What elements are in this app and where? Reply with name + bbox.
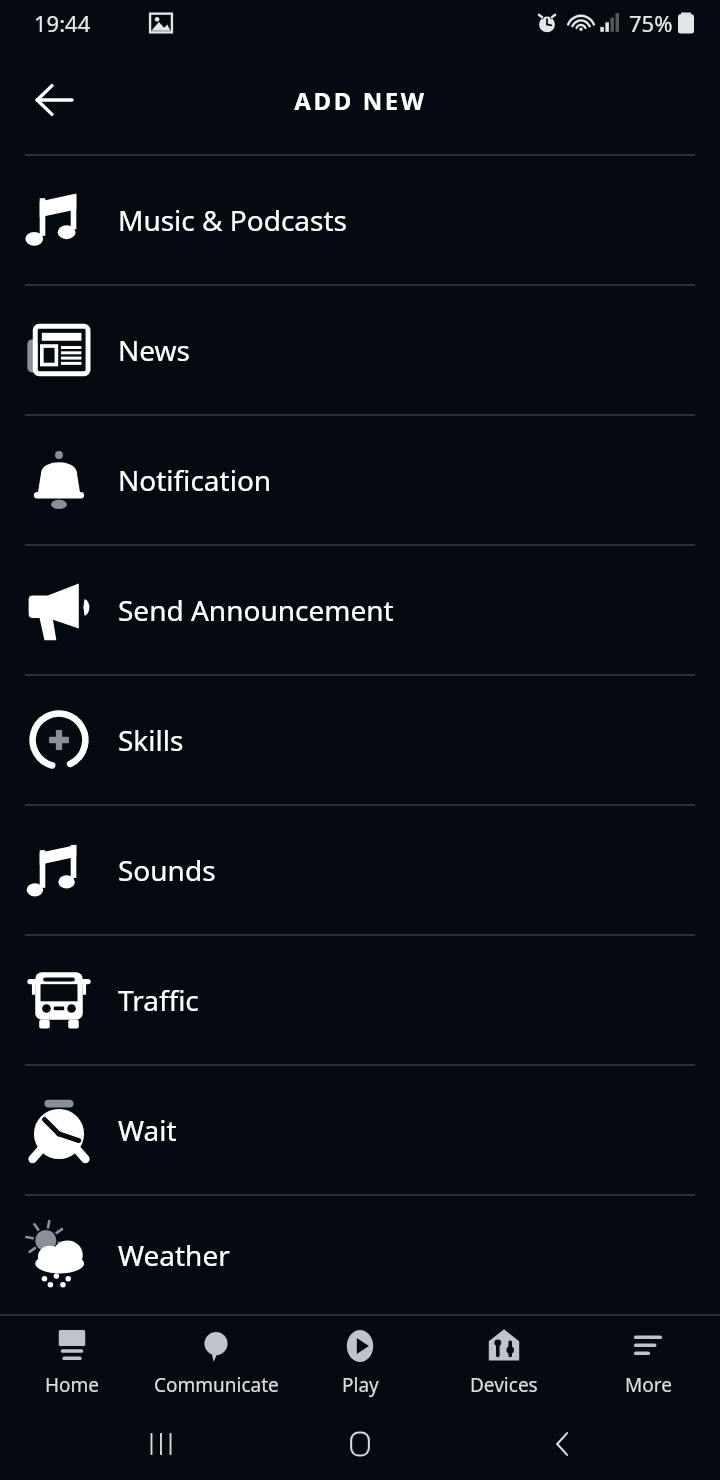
button[interactable]: More	[576, 1316, 720, 1408]
staticText: Traffic	[118, 981, 199, 1019]
button[interactable]: Traffic	[0, 936, 720, 1064]
staticText: Home	[45, 1372, 100, 1398]
staticText: More	[625, 1372, 672, 1398]
button[interactable]: Home	[0, 1316, 144, 1408]
button[interactable]: Wait	[0, 1066, 720, 1194]
button[interactable]: Back	[16, 62, 92, 138]
button[interactable]: Sounds	[0, 806, 720, 934]
staticText: Notification	[118, 461, 272, 499]
staticText: Skills	[118, 721, 184, 759]
staticText: Weather	[118, 1236, 230, 1274]
button[interactable]: News	[0, 286, 720, 414]
staticText: Wait	[118, 1111, 177, 1149]
staticText: Communicate	[154, 1372, 279, 1398]
button[interactable]: Music & Podcasts	[0, 156, 720, 284]
button[interactable]: Notification	[0, 416, 720, 544]
button[interactable]: Weather	[0, 1196, 720, 1314]
staticText: Sounds	[118, 851, 216, 889]
staticText: 75%	[629, 8, 673, 38]
staticText: News	[118, 331, 190, 369]
button[interactable]: Skills	[0, 676, 720, 804]
staticText: Music & Podcasts	[118, 201, 348, 239]
button[interactable]: Play	[288, 1316, 432, 1408]
staticText: ADD NEW	[294, 84, 427, 117]
button[interactable]: Send Announcement	[0, 546, 720, 674]
button[interactable]: Devices	[432, 1316, 576, 1408]
button[interactable]: Communicate	[144, 1316, 288, 1408]
staticText: 19:44	[34, 8, 91, 38]
staticText: Devices	[470, 1372, 538, 1398]
staticText: Send Announcement	[118, 591, 394, 629]
staticText: Play	[342, 1372, 379, 1398]
